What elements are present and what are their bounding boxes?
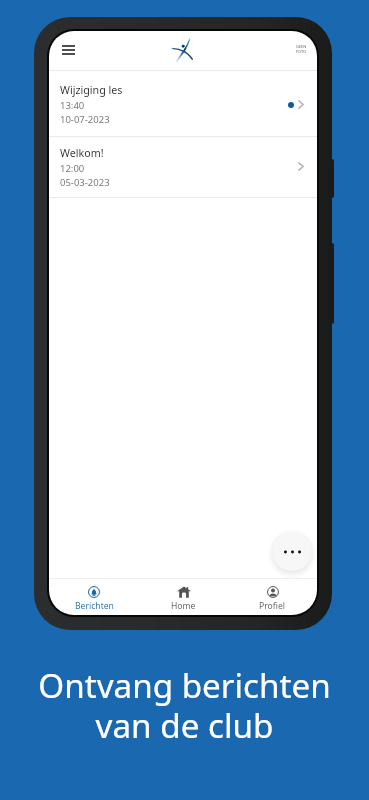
staticText: 13:40: [60, 99, 85, 112]
staticText: Welkom!: [60, 146, 104, 161]
staticText: Berichten: [75, 600, 114, 612]
button[interactable]: Profiel: [228, 579, 317, 615]
staticText: Profiel: [259, 600, 286, 612]
button[interactable]: Wijziging les: [49, 71, 317, 136]
staticText: Wijziging les: [60, 83, 123, 98]
staticText: 12:00: [60, 162, 85, 175]
button[interactable]: Berichten: [49, 579, 139, 615]
staticText: 05-03-2023: [60, 176, 110, 189]
staticText: GEEN FOTO: [296, 44, 307, 54]
button[interactable]: Welkom!: [49, 137, 317, 197]
button[interactable]: More options: [273, 533, 311, 571]
button[interactable]: Home: [139, 579, 228, 615]
staticText: 10-07-2023: [60, 113, 110, 126]
button[interactable]: Menu: [55, 37, 81, 63]
staticText: Ontvang berichten van de club: [0, 663, 369, 747]
staticText: Home: [171, 600, 196, 612]
